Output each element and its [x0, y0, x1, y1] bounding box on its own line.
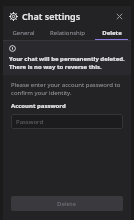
staticText: Chat settings [22, 10, 81, 22]
button[interactable]: Delete [11, 196, 123, 211]
staticText: Account password [11, 102, 66, 110]
staticText: Please enter your account password to co… [11, 81, 123, 97]
button[interactable]: Delete [92, 26, 131, 40]
button[interactable]: General [3, 26, 43, 40]
staticText: Password [16, 118, 44, 126]
staticText: General [12, 29, 35, 37]
staticText: Delete [57, 200, 77, 208]
staticText: Delete [102, 29, 122, 37]
button[interactable]: Relationship [43, 26, 92, 40]
button[interactable]: Password [11, 114, 123, 129]
button[interactable]: Close [110, 7, 128, 25]
staticText: Your chat will be permanently deleted. T… [9, 55, 125, 71]
staticText: Relationship [50, 29, 85, 37]
